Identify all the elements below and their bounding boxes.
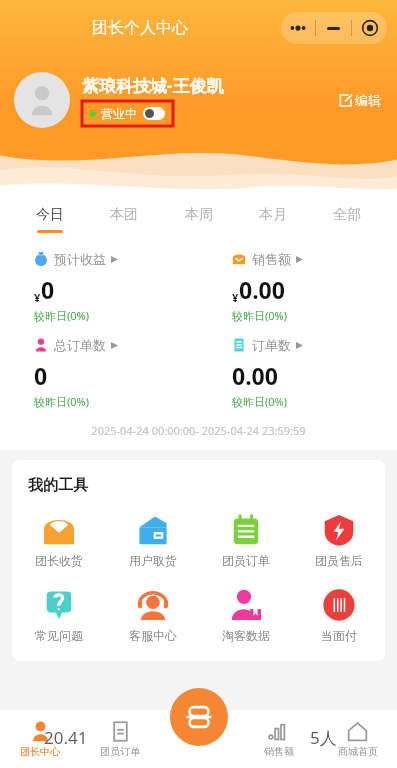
button[interactable]: 发布 xyxy=(170,688,228,746)
staticText: 我的工具 xyxy=(28,476,88,495)
button[interactable]: 客服中心 xyxy=(106,586,199,645)
staticText: 预计收益 xyxy=(54,251,106,267)
staticText: 团员订单 xyxy=(100,745,140,758)
staticText: 0 xyxy=(34,360,48,391)
button[interactable]: 销售额 xyxy=(198,251,397,323)
staticText: 编辑 xyxy=(355,92,381,108)
staticText: 团长个人中心 xyxy=(92,18,188,38)
staticText: 团员订单 xyxy=(222,553,270,568)
staticText: ¥ xyxy=(34,290,41,305)
staticText: 当面付 xyxy=(321,628,357,643)
button[interactable]: 今日 xyxy=(26,202,74,237)
button[interactable]: 本团 xyxy=(100,202,148,237)
button[interactable]: 预计收益 xyxy=(0,251,198,323)
staticText: 销售额 xyxy=(264,745,294,758)
staticText: 总订单数 xyxy=(54,337,106,353)
staticText: 本月 xyxy=(259,206,287,224)
button[interactable]: 总订单数 xyxy=(0,337,198,409)
button[interactable]: 头像 xyxy=(14,72,70,128)
staticText: 订单数 xyxy=(252,337,291,353)
staticText: 团员售后 xyxy=(315,553,363,568)
staticText: 客服中心 xyxy=(129,628,177,643)
button[interactable]: 全部 xyxy=(323,202,371,237)
staticText: 0.00 xyxy=(239,274,285,305)
button[interactable]: 关闭 xyxy=(352,12,387,44)
staticText: 常见问题 xyxy=(35,628,83,643)
button[interactable]: 团员售后 xyxy=(292,511,385,570)
staticText: 全部 xyxy=(333,206,361,224)
staticText: 较昨日(0%) xyxy=(232,308,288,323)
button[interactable]: 本月 xyxy=(249,202,297,237)
staticText: 较昨日(0%) xyxy=(34,308,90,323)
staticText: 商城首页 xyxy=(338,745,378,758)
button[interactable]: 用户取货 xyxy=(106,511,199,570)
button[interactable]: 编辑 xyxy=(335,88,385,112)
button[interactable]: 当面付 xyxy=(292,586,385,645)
button[interactable]: 团长收货 xyxy=(12,511,106,570)
staticText: ¥ xyxy=(232,290,239,305)
button[interactable]: 销售额 xyxy=(239,710,318,768)
staticText: 用户取货 xyxy=(129,553,177,568)
button[interactable]: 常见问题 xyxy=(12,586,106,645)
button[interactable]: 团员订单 xyxy=(199,511,292,570)
staticText: 淘客数据 xyxy=(222,628,270,643)
staticText: 本周 xyxy=(185,206,213,224)
staticText: 5人 xyxy=(310,726,337,749)
staticText: 较昨日(0%) xyxy=(232,394,288,409)
staticText: 2025-04-24 00:00:00- 2025-04-24 23:59:59 xyxy=(0,423,397,438)
staticText: 营业中 xyxy=(101,106,137,121)
staticText: 较昨日(0%) xyxy=(34,394,90,409)
staticText: 团长中心 xyxy=(20,745,60,758)
button[interactable]: 最小化 xyxy=(316,12,351,44)
button[interactable]: 商城首页 xyxy=(318,710,397,768)
staticText: 0.00 xyxy=(232,360,278,391)
staticText: 今日 xyxy=(36,206,64,224)
button[interactable]: 更多 xyxy=(281,12,315,44)
staticText: 紫琅科技城-王俊凯 xyxy=(82,74,224,97)
staticText: 0 xyxy=(41,274,55,305)
button[interactable]: 订单数 xyxy=(198,337,397,409)
staticText: 团长收货 xyxy=(35,553,83,568)
button[interactable]: 团员订单 xyxy=(80,710,160,768)
button[interactable]: 淘客数据 xyxy=(199,586,292,645)
staticText: 销售额 xyxy=(252,251,291,267)
staticText: 本团 xyxy=(110,206,138,224)
button[interactable]: 团长中心 xyxy=(0,710,80,768)
button[interactable]: 营业状态 xyxy=(82,101,173,126)
button[interactable]: 本周 xyxy=(175,202,223,237)
staticText: 20.41 xyxy=(44,726,88,749)
